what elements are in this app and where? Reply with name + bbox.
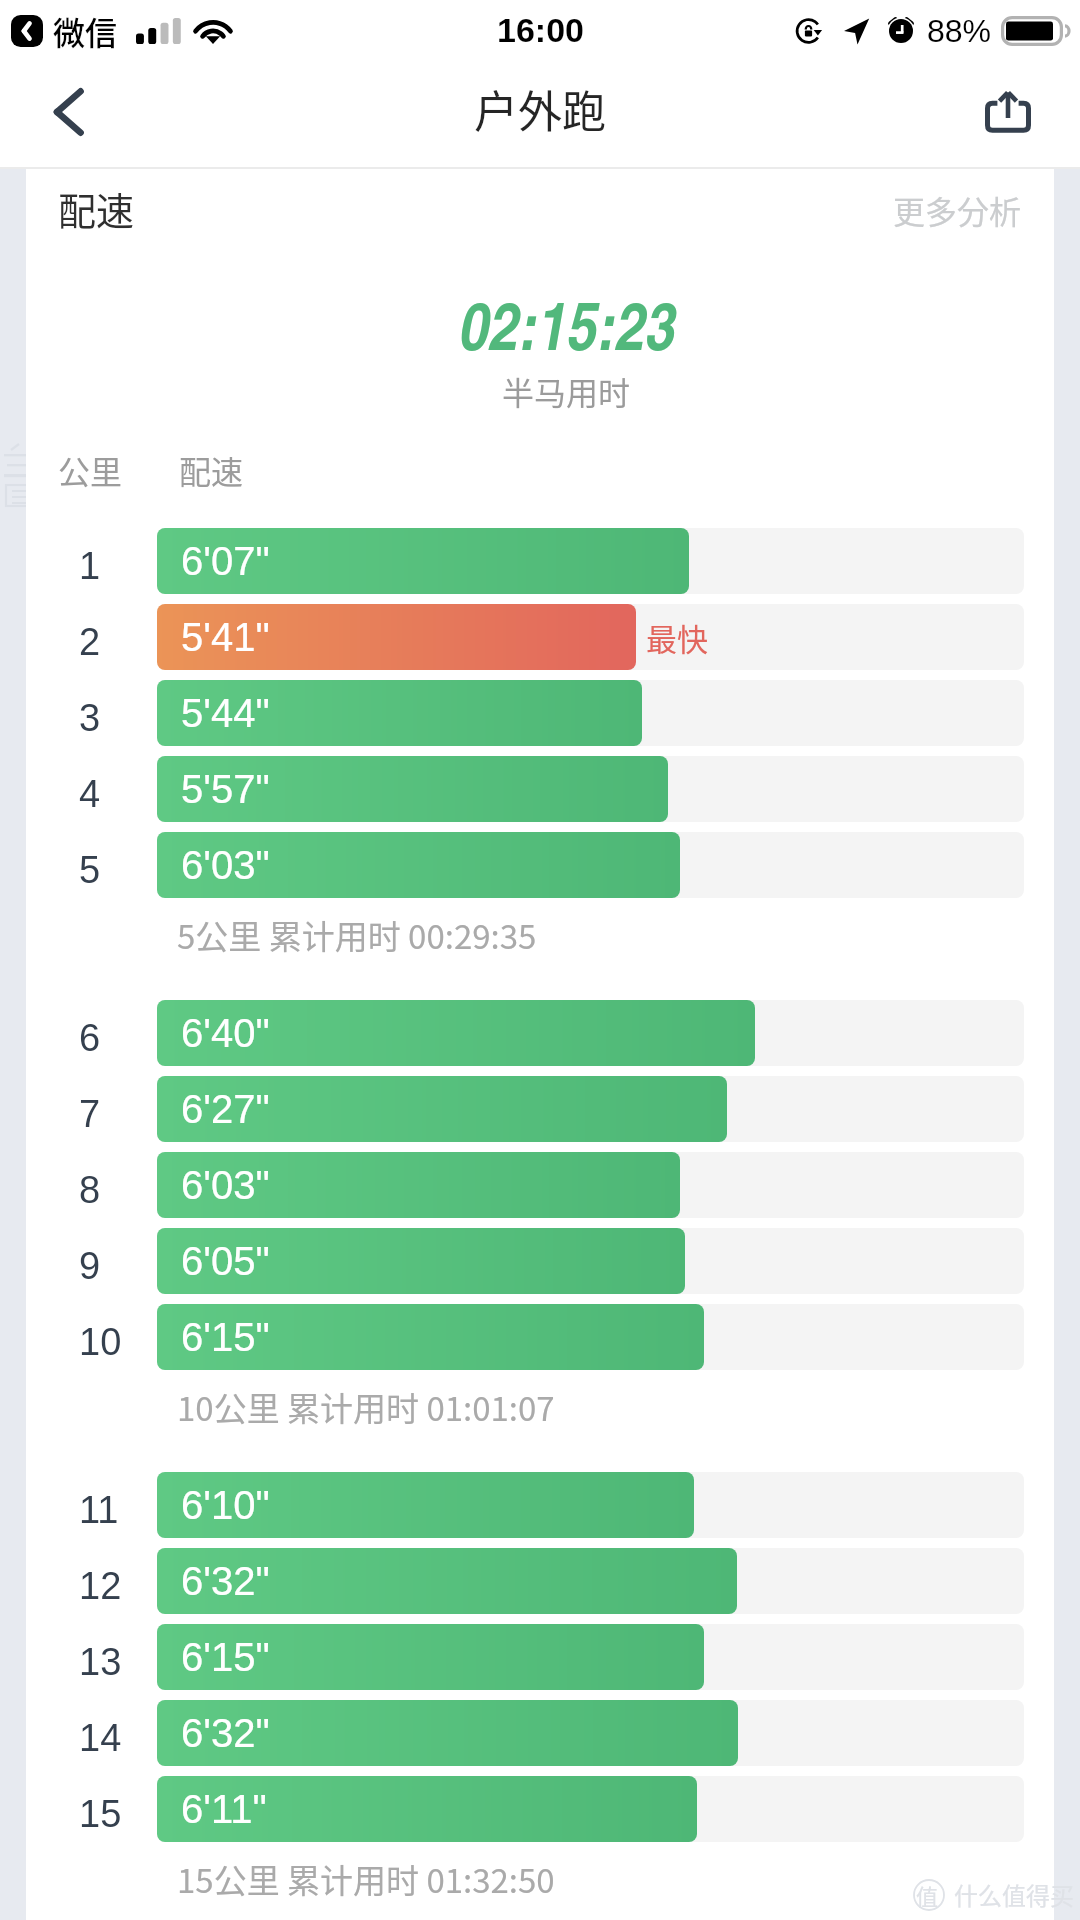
staticText: 最快 [646, 615, 708, 660]
staticText: 9 [79, 1245, 101, 1287]
staticText: 配速 [179, 447, 244, 493]
button[interactable]: 15 [26, 1776, 1054, 1842]
staticText: 更多分析 [893, 187, 1022, 233]
staticText: 10 [79, 1321, 122, 1363]
button[interactable]: 11 [26, 1472, 1054, 1538]
button[interactable]: 配速 [26, 168, 1054, 260]
button[interactable]: 5 [26, 832, 1054, 898]
button[interactable]: 8 [26, 1152, 1054, 1218]
staticText: 16:00 [497, 11, 584, 49]
staticText: 3 [79, 697, 101, 739]
staticText: 13 [79, 1641, 122, 1683]
staticText: 公里 [58, 447, 123, 493]
staticText: 6'15" [181, 1635, 270, 1680]
staticText: 6'15" [181, 1315, 270, 1360]
button[interactable]: 4 [26, 756, 1054, 822]
button[interactable]: 9 [26, 1228, 1054, 1294]
button[interactable]: Back [34, 76, 106, 148]
staticText: 6'32" [181, 1711, 270, 1756]
staticText: 配速 [58, 181, 135, 236]
button[interactable]: 10 [26, 1304, 1054, 1370]
staticText: 5'57" [181, 767, 270, 812]
staticText: 5 [79, 849, 101, 891]
staticText: 15公里 累计用时 01:32:50 [177, 1855, 555, 1903]
staticText: 14 [79, 1717, 122, 1759]
staticText: 半马用时 [502, 368, 631, 414]
staticText: 15 [79, 1793, 122, 1835]
button[interactable]: 6 [26, 1000, 1054, 1066]
staticText: 4 [79, 773, 101, 815]
staticText: 02:15:23 [459, 277, 676, 370]
button[interactable]: 13 [26, 1624, 1054, 1690]
staticText: 什么值得买 [954, 1877, 1074, 1912]
staticText: 户外跑 [474, 77, 606, 141]
staticText: 6'10" [181, 1483, 270, 1528]
staticText: 8 [79, 1169, 101, 1211]
staticText: 6'03" [181, 843, 270, 888]
button[interactable]: 14 [26, 1700, 1054, 1766]
button[interactable]: 3 [26, 680, 1054, 746]
staticText: 7 [79, 1093, 101, 1135]
button[interactable]: 7 [26, 1076, 1054, 1142]
staticText: 6'07" [181, 539, 270, 584]
staticText: 6'05" [181, 1239, 270, 1284]
staticText: 5公里 累计用时 00:29:35 [177, 911, 537, 959]
staticText: 11 [79, 1489, 119, 1531]
staticText: 1 [79, 545, 101, 587]
staticText: 微信 [53, 8, 118, 54]
staticText: 2 [79, 621, 101, 663]
staticText: 12 [79, 1565, 122, 1607]
button[interactable]: 2 [26, 604, 1054, 670]
staticText: 6 [79, 1017, 101, 1059]
staticText: 值 [916, 1879, 939, 1911]
staticText: 5'44" [181, 691, 270, 736]
staticText: 6'03" [181, 1163, 270, 1208]
staticText: 6'27" [181, 1087, 270, 1132]
button[interactable]: 1 [26, 528, 1054, 594]
staticText: 6'32" [181, 1559, 270, 1604]
staticText: 10公里 累计用时 01:01:07 [177, 1383, 555, 1431]
button[interactable]: Share [972, 75, 1044, 147]
staticText: 6'11" [181, 1787, 267, 1832]
staticText: 5'41" [181, 615, 270, 660]
button[interactable]: 12 [26, 1548, 1054, 1614]
staticText: 88% [927, 13, 992, 49]
staticText: 6'40" [181, 1011, 270, 1056]
